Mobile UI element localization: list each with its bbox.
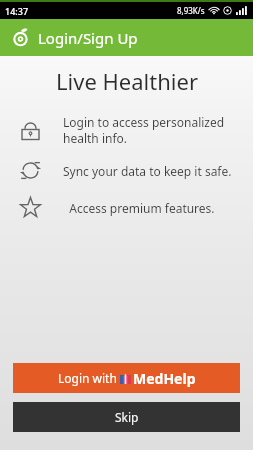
- staticText: Login/Sign Up: [38, 28, 138, 48]
- staticText: 14:37: [5, 5, 29, 17]
- staticText: Live Healthier: [56, 66, 198, 96]
- staticText: Sync your data to keep it safe.: [63, 163, 232, 179]
- staticText: Skip: [115, 409, 139, 425]
- staticText: Login to access personalized health info…: [63, 114, 225, 146]
- staticText: Login with: [58, 370, 120, 386]
- staticText: Access premium features.: [63, 200, 215, 216]
- button[interactable]: Skip: [13, 402, 240, 432]
- button[interactable]: Login with: [13, 363, 240, 393]
- staticText: MedHelp: [133, 369, 196, 388]
- staticText: 8,93K/s: [177, 5, 205, 16]
